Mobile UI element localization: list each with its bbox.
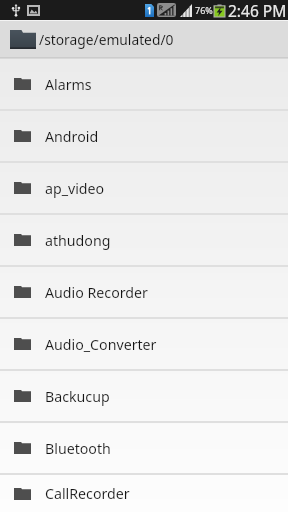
button[interactable]: CallRecorder (0, 475, 288, 512)
button[interactable]: Android (0, 111, 288, 161)
other: Mobile signal strength (180, 4, 192, 17)
button[interactable]: Audio Recorder (0, 267, 288, 317)
button[interactable]: athudong (0, 215, 288, 265)
other: Roaming signal (157, 3, 176, 17)
staticText: Backucup (45, 387, 110, 406)
staticText: /storage/emulated/0 (39, 30, 174, 49)
staticText: Android (45, 127, 99, 146)
button[interactable]: ap_video (0, 163, 288, 213)
staticText: 2:46 PM (228, 0, 287, 20)
staticText: 76% (195, 4, 213, 16)
button[interactable]: Audio_Converter (0, 319, 288, 369)
button[interactable]: /storage/emulated/0 (0, 21, 288, 57)
button[interactable]: Alarms (0, 59, 288, 109)
staticText: Audio Recorder (45, 283, 148, 302)
staticText: athudong (45, 231, 111, 250)
other: SIM 1 (145, 4, 154, 17)
other: USB connected (12, 4, 20, 17)
staticText: Alarms (45, 75, 92, 94)
button[interactable]: Bluetooth (0, 423, 288, 473)
other: Battery charging 76 percent (214, 4, 225, 17)
button[interactable]: Backucup (0, 371, 288, 421)
other: Screenshot captured (27, 5, 40, 16)
staticText: ap_video (45, 179, 105, 198)
staticText: CallRecorder (45, 484, 130, 503)
staticText: Bluetooth (45, 439, 111, 458)
staticText: Audio_Converter (45, 335, 157, 354)
